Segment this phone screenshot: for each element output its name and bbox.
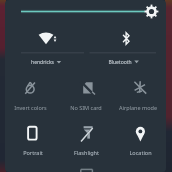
staticText: Airplane mode	[119, 104, 157, 111]
button[interactable]	[61, 72, 111, 114]
button[interactable]	[8, 72, 58, 114]
button[interactable]	[61, 118, 111, 160]
button[interactable]	[8, 118, 58, 160]
button[interactable]	[114, 72, 164, 114]
staticText: Invert colors	[14, 104, 47, 111]
staticText: Portrait	[23, 149, 43, 156]
button[interactable]	[90, 26, 156, 68]
staticText: Location	[129, 149, 152, 156]
staticText: Flashlight	[74, 149, 99, 156]
button[interactable]	[21, 26, 84, 68]
button[interactable]	[15, 2, 150, 21]
button[interactable]	[114, 118, 164, 160]
staticText: hendricks	[31, 59, 54, 66]
staticText: No SIM card	[70, 104, 102, 111]
staticText: Bluetooth	[108, 59, 132, 66]
